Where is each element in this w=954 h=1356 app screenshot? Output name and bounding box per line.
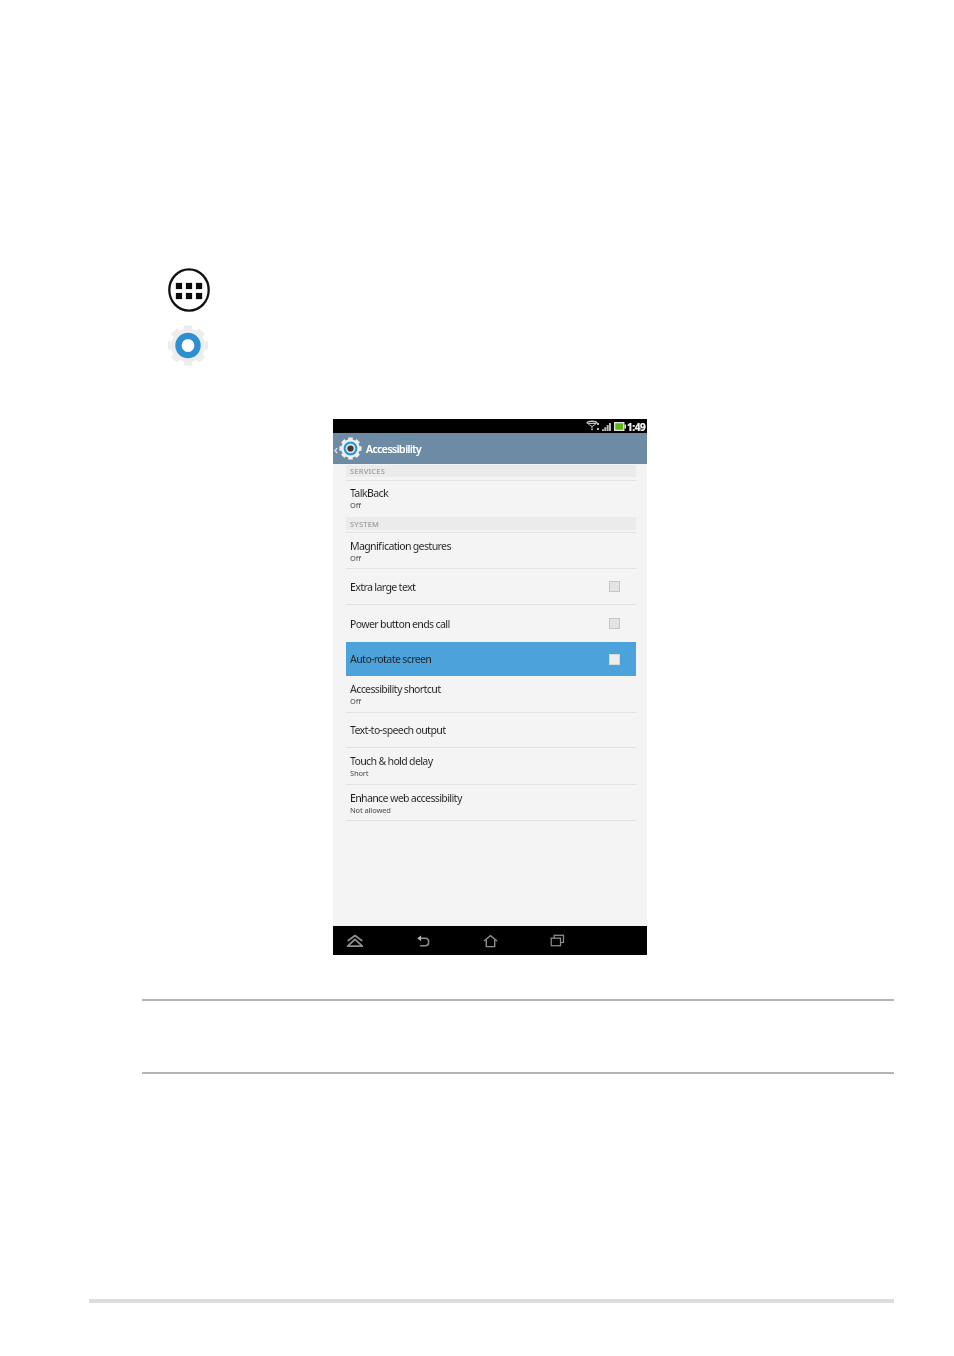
button[interactable]: Touch & hold delay (346, 748, 636, 784)
button[interactable]: Recents (543, 926, 572, 955)
button[interactable]: Extra large text (346, 569, 636, 604)
staticText: Text-to-speech output (350, 723, 446, 737)
button[interactable]: All apps (168, 268, 210, 312)
staticText: Power button ends call (350, 617, 450, 631)
button[interactable]: Power button ends call (346, 605, 636, 642)
button[interactable]: Settings (167, 324, 209, 367)
staticText: ‹ (334, 440, 339, 458)
button[interactable]: ‹ (333, 433, 647, 464)
button[interactable]: Back (409, 926, 438, 955)
staticText: SERVICES (350, 466, 385, 476)
staticText: Enhance web accessibility (350, 791, 462, 805)
staticText: TalkBack (350, 486, 389, 500)
staticText: Short (350, 768, 369, 778)
staticText: Accessibility shortcut (350, 682, 441, 696)
staticText: Off (350, 500, 361, 510)
button[interactable]: Enhance web accessibility (346, 785, 636, 820)
staticText: Magnification gestures (350, 539, 451, 553)
button[interactable]: Magnification gestures (346, 533, 636, 568)
button[interactable]: TalkBack (346, 481, 636, 515)
staticText: Auto-rotate screen (350, 652, 432, 666)
button[interactable]: Menu (340, 926, 369, 955)
staticText: Off (350, 553, 361, 563)
staticText: Accessibility (366, 442, 421, 456)
button[interactable]: Home (476, 926, 505, 955)
staticText: 1:49 (627, 420, 646, 434)
staticText: Not allowed (350, 805, 391, 815)
staticText: Touch & hold delay (350, 754, 433, 768)
button[interactable]: Auto-rotate screen (346, 642, 636, 676)
button[interactable]: Text-to-speech output (346, 713, 636, 747)
staticText: SYSTEM (350, 519, 380, 529)
button[interactable]: Accessibility shortcut (346, 676, 636, 712)
staticText: Off (350, 696, 361, 706)
staticText: Extra large text (350, 580, 416, 594)
